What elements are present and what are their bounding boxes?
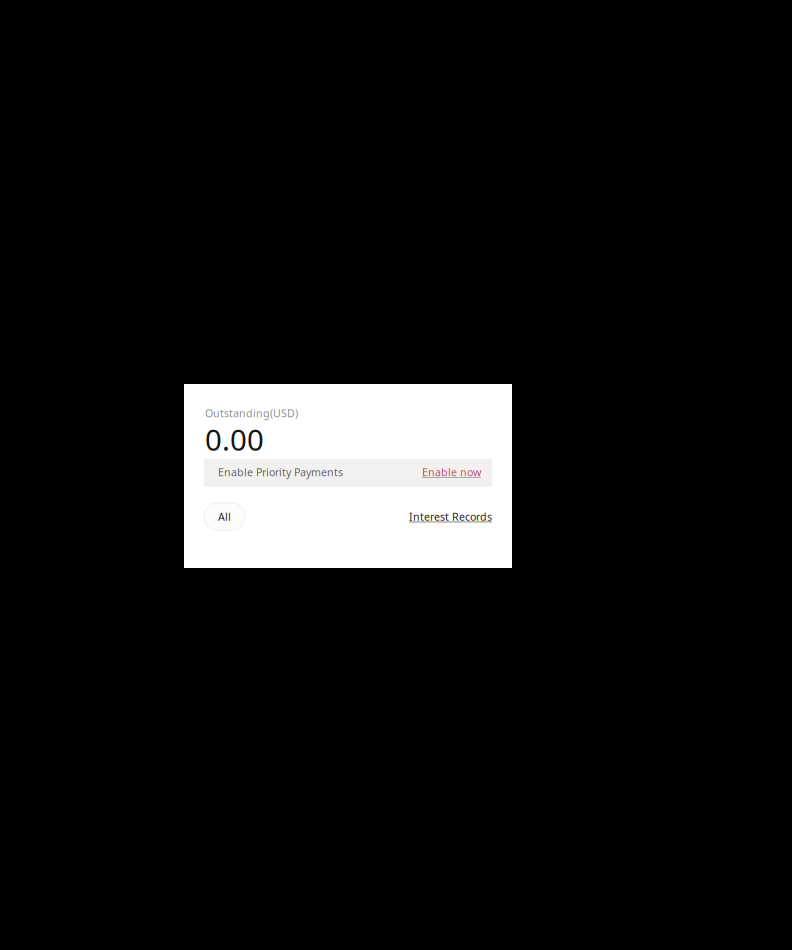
button[interactable]: Interest Records [409, 509, 492, 524]
staticText: Enable now [422, 465, 481, 479]
staticText: All [218, 509, 231, 524]
staticText: Interest Records [409, 509, 492, 524]
staticText: Outstanding(USD) [205, 406, 298, 420]
staticText: Enable Priority Payments [218, 465, 343, 479]
button[interactable]: Enable now [422, 465, 481, 479]
staticText: 0.00 [205, 420, 264, 459]
button[interactable]: All [204, 503, 245, 530]
